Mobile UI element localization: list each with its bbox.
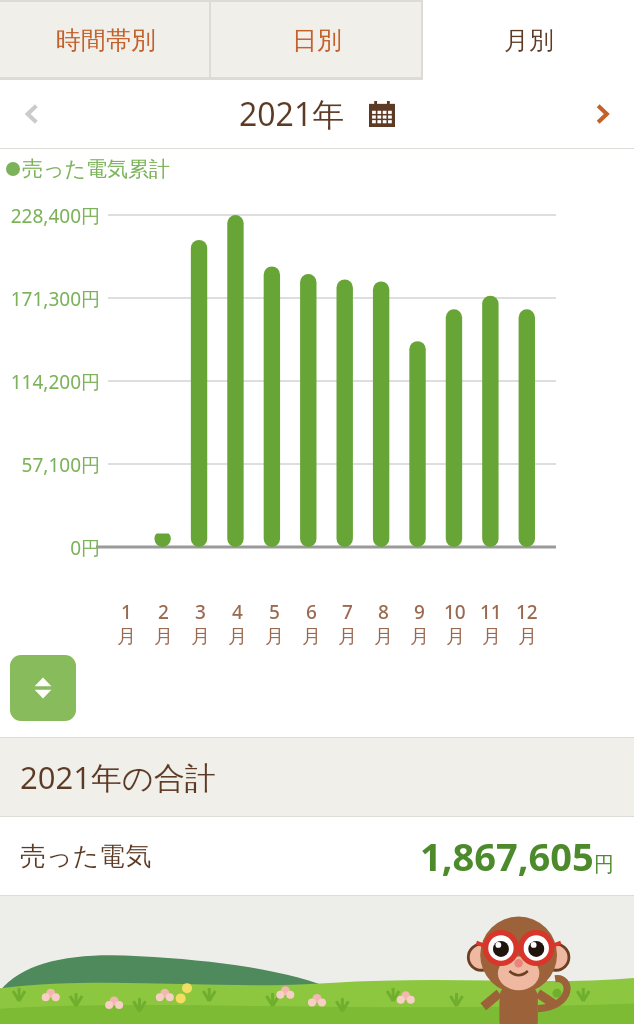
staticText: 時間帯別	[56, 25, 156, 56]
staticText: 6	[306, 599, 317, 625]
staticText: 月	[302, 625, 321, 649]
staticText: 月	[518, 625, 537, 649]
staticText: 57,100円	[21, 452, 100, 476]
staticText: 0円	[70, 535, 100, 559]
button[interactable]: 日別	[211, 0, 423, 80]
staticText: 月	[117, 625, 136, 649]
staticText: 1,867,605	[420, 830, 594, 882]
staticText: 1	[121, 599, 132, 625]
staticText: 月	[191, 625, 210, 649]
staticText: 7	[342, 599, 353, 625]
staticText: 11	[480, 599, 502, 625]
staticText: 12	[516, 599, 538, 625]
staticText: 売った電気	[20, 840, 152, 873]
button[interactable]: Toggle sort order	[10, 655, 76, 721]
staticText: 月	[154, 625, 173, 649]
staticText: 月	[482, 625, 501, 649]
staticText: 171,300円	[10, 286, 100, 310]
button[interactable]: Previous year	[0, 80, 64, 148]
staticText: 月	[374, 625, 393, 649]
staticText: 月	[338, 625, 357, 649]
staticText: 5	[269, 599, 280, 625]
staticText: 228,400円	[10, 203, 100, 227]
staticText: 114,200円	[10, 369, 100, 393]
button[interactable]: 月別	[423, 0, 634, 80]
staticText: 日別	[292, 25, 342, 56]
staticText: 3	[195, 599, 206, 625]
button[interactable]: 2021年	[239, 92, 395, 136]
staticText: 売った電気累計	[22, 156, 170, 182]
staticText: 2021年	[239, 92, 345, 136]
staticText: 2021年の合計	[20, 756, 216, 798]
staticText: 10	[444, 599, 466, 625]
staticText: 円	[594, 852, 614, 877]
other: Select date	[369, 101, 395, 127]
button[interactable]: 売った電気	[0, 817, 634, 895]
staticText: 2	[158, 599, 169, 625]
staticText: 9	[414, 599, 425, 625]
staticText: 月別	[504, 25, 554, 56]
staticText: 4	[232, 599, 243, 625]
staticText: 月	[410, 625, 429, 649]
staticText: 月	[228, 625, 247, 649]
staticText: 月	[446, 625, 465, 649]
button[interactable]: Next year	[570, 80, 634, 148]
staticText: 8	[378, 599, 389, 625]
staticText: 月	[265, 625, 284, 649]
button[interactable]: 時間帯別	[0, 0, 211, 80]
